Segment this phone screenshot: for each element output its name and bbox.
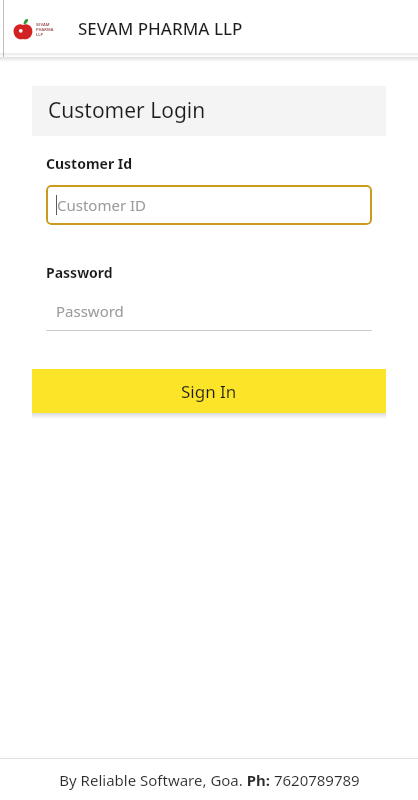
staticText: Password (56, 301, 124, 321)
staticText: Customer Id (46, 154, 133, 173)
staticText: Customer ID (57, 195, 147, 215)
button[interactable]: Sign In (32, 369, 386, 413)
staticText: Customer Login (48, 96, 206, 125)
button[interactable]: Password (46, 298, 372, 331)
staticText: SEVAM (36, 22, 50, 27)
staticText: SEVAM PHARMA LLP (78, 17, 243, 40)
staticText: Password (46, 263, 113, 282)
staticText: By Reliable Software, Goa. Ph: 762078978… (59, 770, 360, 790)
staticText: Sign In (181, 380, 237, 403)
button[interactable]: Customer ID (46, 185, 372, 225)
staticText: PHARMA LLP (36, 27, 58, 37)
